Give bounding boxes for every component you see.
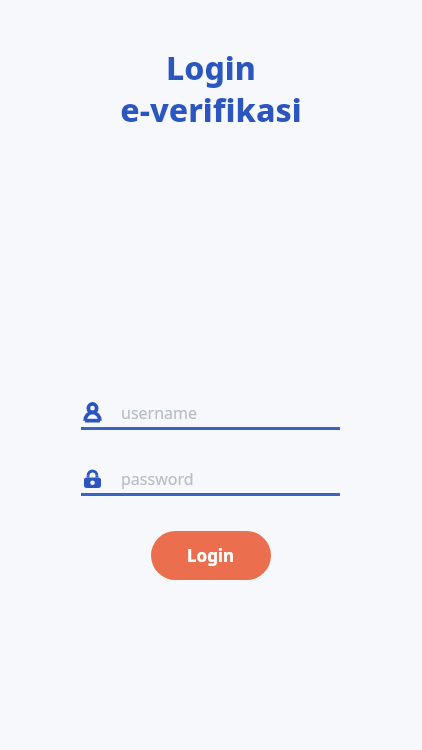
staticText: username	[121, 402, 198, 424]
staticText: password	[121, 468, 194, 490]
staticText: Login e-verifikasi	[0, 46, 422, 131]
button[interactable]: password	[81, 464, 340, 496]
staticText: Login	[187, 544, 235, 567]
button[interactable]: username	[81, 398, 340, 430]
button[interactable]: Login	[151, 531, 271, 580]
